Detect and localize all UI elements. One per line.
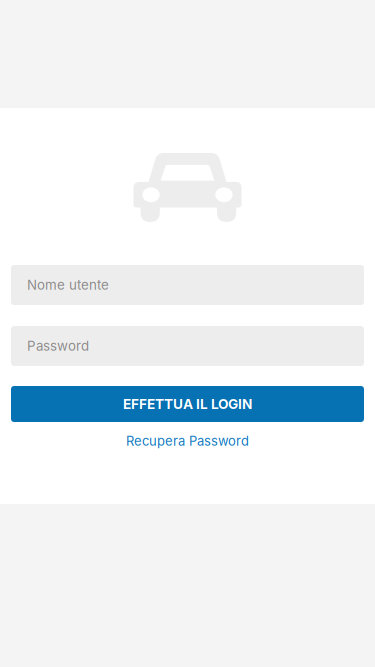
staticText: EFFETTUA IL LOGIN: [123, 396, 252, 412]
button[interactable]: Nome utente: [11, 265, 364, 305]
staticText: Password: [27, 338, 89, 354]
button[interactable]: Password: [11, 326, 364, 366]
staticText: Recupera Password: [126, 433, 249, 449]
staticText: Nome utente: [27, 277, 109, 293]
button[interactable]: EFFETTUA IL LOGIN: [11, 386, 364, 422]
button[interactable]: Recupera Password: [11, 430, 364, 452]
